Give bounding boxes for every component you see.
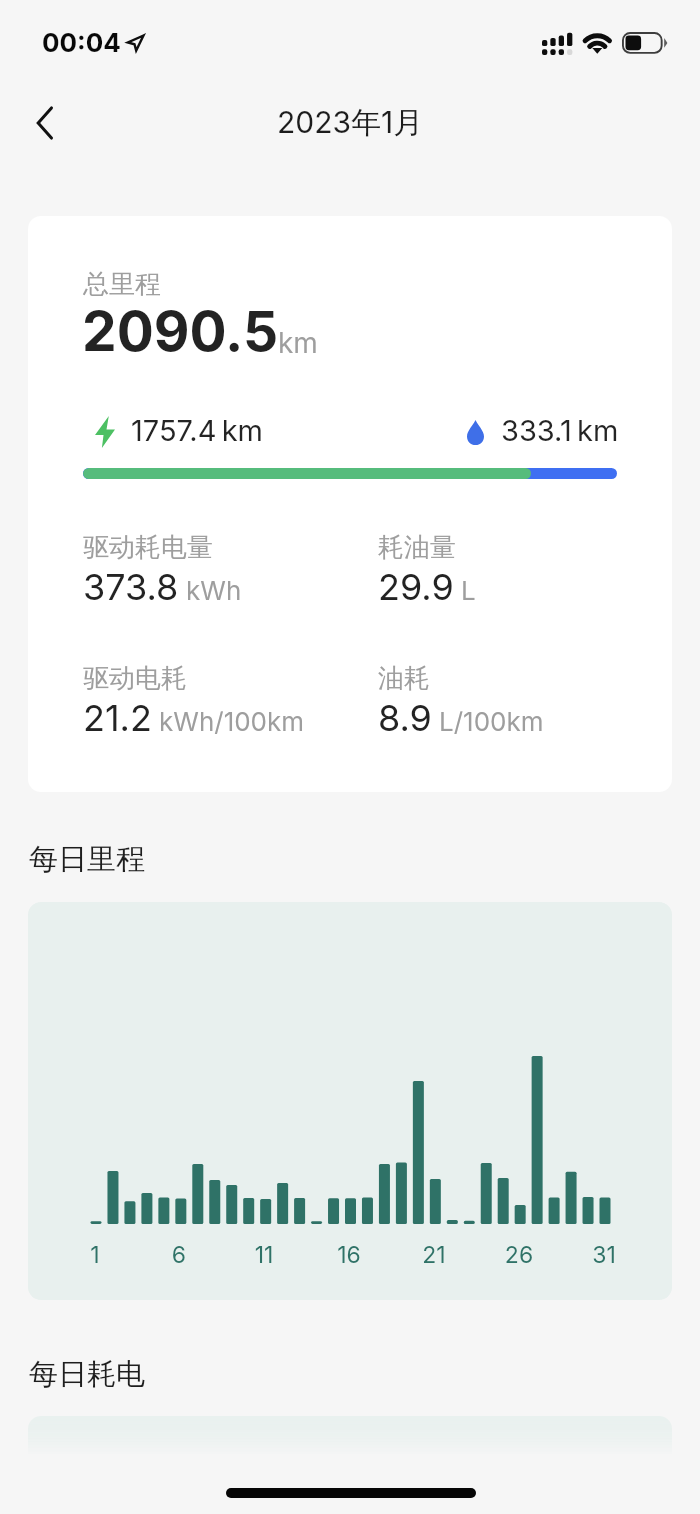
staticText: 373.8 bbox=[83, 565, 179, 609]
staticText: 耗油量 bbox=[378, 531, 456, 564]
staticText: 26 bbox=[489, 1241, 549, 1269]
staticText: kWh bbox=[186, 575, 242, 606]
staticText: 2023年1月 bbox=[277, 104, 424, 142]
staticText: 31 bbox=[574, 1241, 634, 1269]
staticText: L bbox=[461, 575, 476, 606]
staticText: 00:04 bbox=[42, 27, 121, 58]
staticText: 1757.4 km bbox=[131, 413, 264, 448]
staticText: 8.9 bbox=[378, 696, 432, 740]
staticText: 油耗 bbox=[378, 662, 430, 695]
staticText: 333.1 km bbox=[501, 413, 619, 448]
staticText: 驱动耗电量 bbox=[83, 531, 213, 564]
staticText: 16 bbox=[319, 1241, 379, 1269]
staticText: 1 bbox=[65, 1241, 125, 1269]
staticText: 驱动电耗 bbox=[83, 662, 187, 695]
staticText: 21.2 bbox=[83, 696, 152, 740]
staticText: 29.9 bbox=[378, 565, 454, 609]
button[interactable]: 总里程 bbox=[28, 216, 672, 792]
staticText: km bbox=[278, 326, 318, 360]
staticText: 每日耗电 bbox=[29, 1356, 145, 1393]
staticText: 11 bbox=[234, 1241, 294, 1269]
button[interactable]: 2023年1月 bbox=[271, 102, 430, 144]
staticText: L/100km bbox=[439, 706, 544, 737]
staticText: 2090.5 bbox=[82, 298, 279, 365]
staticText: 21 bbox=[404, 1241, 464, 1269]
staticText: 6 bbox=[149, 1241, 209, 1269]
button[interactable]: 1 bbox=[28, 902, 672, 1300]
staticText: 每日里程 bbox=[29, 841, 145, 878]
button[interactable]: Back bbox=[17, 95, 73, 151]
staticText: 总里程 bbox=[83, 268, 161, 301]
staticText: kWh/100km bbox=[159, 706, 305, 737]
